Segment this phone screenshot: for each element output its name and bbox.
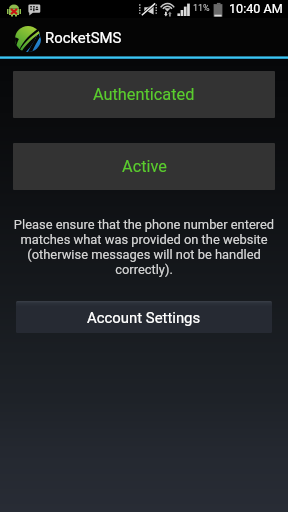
button[interactable]: Authenticated <box>13 71 275 118</box>
staticText: Active <box>122 157 167 176</box>
button[interactable]: Active <box>13 143 275 190</box>
staticText: Account Settings <box>87 309 201 326</box>
staticText: 10:40 AM <box>229 1 283 16</box>
staticText: RocketSMS <box>45 29 122 46</box>
staticText: Please ensure that the phone number ente… <box>12 217 276 277</box>
button[interactable]: Account Settings <box>16 301 272 333</box>
staticText: Authenticated <box>93 85 195 104</box>
staticText: 11% <box>193 3 210 14</box>
